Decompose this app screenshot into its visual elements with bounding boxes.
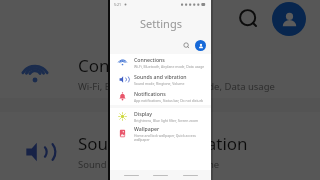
staticText: Display — [134, 110, 153, 117]
staticText: App notifications, Status bar, Do not di… — [134, 98, 204, 103]
staticText: 5:21 — [114, 2, 122, 7]
button[interactable]: Sounds and vibration — [110, 71, 211, 88]
staticText: Brightness, Blue light filter, Screen zo… — [134, 118, 199, 123]
staticText: Home and lock wallpaper, Quick access wa… — [134, 133, 206, 142]
button[interactable]: Account profile — [195, 40, 206, 51]
staticText: Wallpaper — [134, 125, 160, 132]
button[interactable]: Search settings — [181, 40, 192, 51]
button[interactable]: Display — [110, 108, 211, 125]
button[interactable]: Connections — [110, 54, 211, 71]
staticText: Sounds and vibration — [78, 132, 248, 155]
staticText: Sound mode, Ringtone, Volume — [134, 81, 185, 86]
button[interactable]: Navigation gesture handle — [123, 171, 140, 179]
staticText: Settings — [140, 16, 182, 31]
staticText: Connections — [134, 56, 165, 63]
button[interactable]: Navigation gesture handle — [182, 171, 199, 179]
button[interactable]: Navigation gesture handle — [152, 171, 169, 179]
staticText: Sounds and vibration — [134, 73, 187, 80]
staticText: Wi-Fi, Bluetooth, Airplane mode, Data us… — [134, 64, 205, 69]
button[interactable]: Notifications — [110, 88, 211, 105]
button[interactable]: Wallpaper — [110, 125, 211, 142]
staticText: Sound mode, Ringtone, Volume — [78, 158, 220, 171]
staticText: Wi-Fi, Bluetooth, Airplane mode, Data us… — [78, 80, 275, 93]
staticText: Connections — [78, 54, 178, 77]
staticText: Notifications — [134, 90, 166, 97]
